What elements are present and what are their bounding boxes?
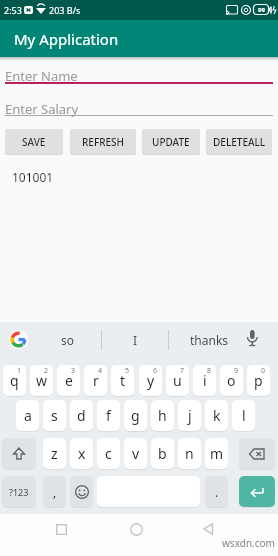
staticText: p <box>254 371 263 390</box>
button[interactable]: My Application <box>0 20 278 57</box>
staticText: 2:53 <box>4 4 22 16</box>
button[interactable]: b <box>151 438 174 469</box>
staticText: DELETEALL <box>213 135 266 149</box>
button[interactable] <box>70 476 93 507</box>
button[interactable]: REFRESH <box>70 129 136 154</box>
staticText: 99 <box>258 6 265 14</box>
button[interactable]: o <box>220 365 243 396</box>
staticText: 4 <box>98 366 103 376</box>
button[interactable]: I <box>108 326 163 354</box>
button[interactable]: p <box>247 365 270 396</box>
button[interactable]: DELETEALL <box>206 129 272 154</box>
staticText: 7 <box>180 366 185 376</box>
button[interactable] <box>246 330 258 349</box>
staticText: v <box>132 444 140 463</box>
staticText: f <box>106 406 111 425</box>
button[interactable] <box>239 476 275 507</box>
staticText: thanks <box>190 332 229 348</box>
button[interactable]: g <box>124 400 147 431</box>
staticText: so <box>61 332 75 348</box>
staticText: 3 <box>71 366 76 376</box>
button[interactable]: k <box>205 400 228 431</box>
staticText: c <box>105 444 112 463</box>
staticText: q <box>10 371 19 390</box>
staticText: r <box>93 371 99 390</box>
button[interactable]: r <box>84 365 107 396</box>
staticText: . <box>215 484 219 500</box>
button[interactable]: m <box>205 438 228 469</box>
staticText: w <box>36 371 48 390</box>
button[interactable]: z <box>43 438 66 469</box>
staticText: o <box>227 371 236 390</box>
staticText: I <box>133 332 138 348</box>
button[interactable] <box>130 523 143 536</box>
staticText: k <box>213 406 221 425</box>
staticText: 1 <box>17 366 22 376</box>
button[interactable]: thanks <box>178 326 240 354</box>
button[interactable]: y <box>139 365 162 396</box>
button[interactable]: u <box>166 365 189 396</box>
staticText: 2 <box>44 366 49 376</box>
button[interactable]: n <box>178 438 201 469</box>
staticText: 9 <box>234 366 239 376</box>
button[interactable]: i <box>193 365 216 396</box>
staticText: Enter Name <box>5 67 78 85</box>
staticText: x <box>78 444 86 463</box>
staticText: wsxdn.com <box>222 536 275 550</box>
staticText: SAVE <box>22 135 46 149</box>
staticText: ?123 <box>9 486 29 498</box>
button[interactable] <box>239 438 275 469</box>
staticText: n <box>185 444 194 463</box>
staticText: My Application <box>14 29 119 49</box>
staticText: g <box>131 406 140 425</box>
staticText: 5 <box>125 366 130 376</box>
button[interactable]: d <box>70 400 93 431</box>
button[interactable] <box>203 523 214 535</box>
staticText: j <box>188 406 192 425</box>
staticText: t <box>120 371 126 390</box>
button[interactable]: UPDATE <box>142 129 200 154</box>
staticText: m <box>210 444 224 463</box>
staticText: b <box>158 444 167 463</box>
button[interactable] <box>2 438 36 469</box>
button[interactable]: ?123 <box>2 476 36 507</box>
button[interactable]: e <box>57 365 80 396</box>
button[interactable]: SAVE <box>5 129 63 154</box>
button[interactable]: q <box>3 365 26 396</box>
staticText: i <box>203 371 207 390</box>
staticText: 8 <box>207 366 212 376</box>
button[interactable]: h <box>151 400 174 431</box>
button[interactable]: t <box>111 365 134 396</box>
button[interactable]: j <box>178 400 201 431</box>
staticText: h <box>158 406 167 425</box>
button[interactable]: s <box>43 400 66 431</box>
button[interactable]: l <box>232 400 255 431</box>
staticText: u <box>173 371 182 390</box>
button[interactable]: w <box>30 365 53 396</box>
staticText: s <box>51 406 58 425</box>
button[interactable]: x <box>70 438 93 469</box>
button[interactable]: v <box>124 438 147 469</box>
staticText: 203 B/s <box>49 4 81 16</box>
staticText: Enter Salary <box>5 100 79 118</box>
staticText: UPDATE <box>152 135 190 149</box>
staticText: REFRESH <box>82 135 125 149</box>
staticText: a <box>24 406 32 425</box>
button[interactable]: so <box>40 326 95 354</box>
staticText: 6 <box>153 366 158 376</box>
staticText: d <box>77 406 86 425</box>
staticText: y <box>147 371 155 390</box>
staticText: 101001 <box>12 169 54 185</box>
staticText: , <box>53 484 57 500</box>
button[interactable]: . <box>205 476 228 507</box>
button[interactable] <box>56 524 67 535</box>
button[interactable]: a <box>16 400 39 431</box>
staticText: e <box>65 371 73 390</box>
staticText: 0 <box>261 366 266 376</box>
button[interactable]: , <box>43 476 66 507</box>
staticText: l <box>242 406 246 425</box>
button[interactable]: c <box>97 438 120 469</box>
staticText: z <box>51 444 58 463</box>
button[interactable]: f <box>97 400 120 431</box>
